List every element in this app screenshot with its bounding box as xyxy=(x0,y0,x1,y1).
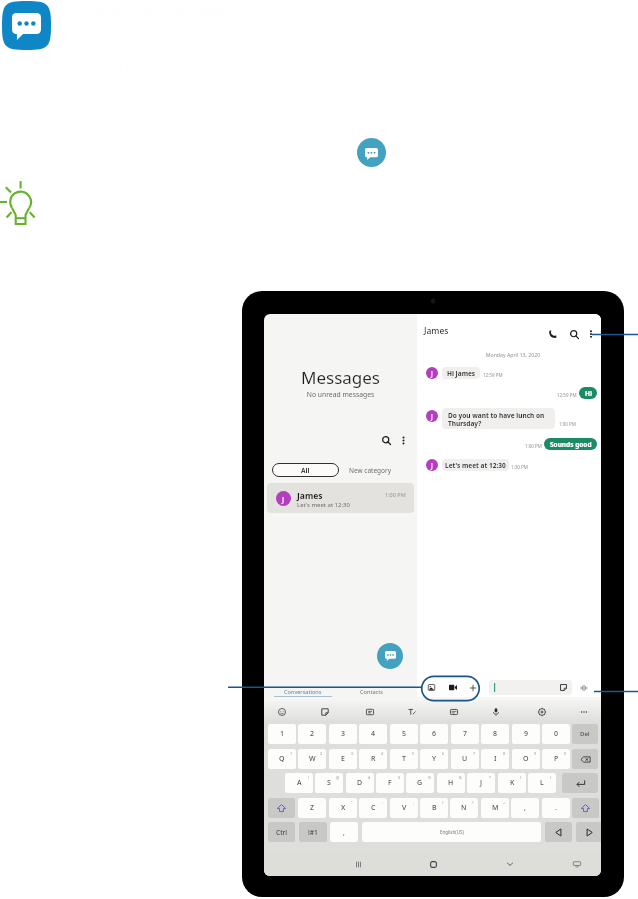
button[interactable]: 6 xyxy=(420,749,448,769)
staticText: ; xyxy=(413,800,414,805)
button[interactable]: ' xyxy=(298,798,326,818)
button[interactable]: English(US) xyxy=(362,822,541,842)
button[interactable]: , xyxy=(511,798,539,818)
button[interactable]: More xyxy=(576,704,592,720)
staticText: % xyxy=(428,775,431,780)
button[interactable]: 9 xyxy=(512,724,540,744)
button[interactable]: * xyxy=(467,773,495,793)
button[interactable]: # xyxy=(346,773,374,793)
button[interactable]: Hide keyboard xyxy=(568,856,586,872)
button[interactable]: 4 xyxy=(359,749,387,769)
button[interactable]: 5 xyxy=(390,724,418,744)
staticText: R xyxy=(371,754,376,764)
other: Samsung Messages xyxy=(2,1,51,50)
button[interactable]: New category xyxy=(349,463,409,477)
button[interactable]: More options xyxy=(396,433,410,447)
button[interactable]: 6 xyxy=(420,724,448,744)
button[interactable]: 8 xyxy=(481,724,509,744)
button[interactable]: @ xyxy=(315,773,343,793)
button[interactable]: !#1 xyxy=(299,822,327,842)
button[interactable]: All xyxy=(272,463,339,477)
button[interactable]: Backspace xyxy=(572,749,598,769)
button[interactable]: Del xyxy=(572,724,598,744)
button[interactable]: More options xyxy=(584,327,598,341)
staticText: 6 xyxy=(442,751,445,756)
button[interactable]: 8 xyxy=(481,749,509,769)
staticText: 9 xyxy=(524,729,529,739)
button[interactable]: Shift xyxy=(268,798,295,818)
staticText: C xyxy=(371,803,376,813)
staticText: " xyxy=(351,800,353,805)
button[interactable]: Conversations xyxy=(272,687,334,697)
button[interactable]: ? xyxy=(450,798,478,818)
button[interactable]: 1 xyxy=(268,724,296,744)
button[interactable]: & xyxy=(437,773,465,793)
staticText: 5 xyxy=(402,729,407,739)
button[interactable]: 7 xyxy=(451,749,479,769)
button[interactable]: New conversation xyxy=(377,643,403,669)
button[interactable]: Stickers xyxy=(317,704,333,720)
button[interactable]: Insert image xyxy=(424,680,439,695)
button[interactable]: Home xyxy=(424,856,442,872)
button[interactable]: 7 xyxy=(451,724,479,744)
button[interactable]: ; xyxy=(390,798,418,818)
button[interactable]: 2 xyxy=(298,724,326,744)
button[interactable]: Search conversation xyxy=(567,327,581,341)
button[interactable]: J xyxy=(267,483,414,513)
button[interactable]: / xyxy=(420,798,448,818)
staticText: : xyxy=(382,800,383,805)
button[interactable]: " xyxy=(329,798,357,818)
button[interactable]: Text style xyxy=(404,704,420,720)
button[interactable]: ) xyxy=(528,773,556,793)
button[interactable]: GIF xyxy=(362,704,378,720)
staticText: New category xyxy=(349,466,391,475)
button[interactable]: Move right xyxy=(576,822,601,842)
button[interactable]: + xyxy=(481,798,509,818)
button[interactable]: Contacts xyxy=(348,687,394,697)
button[interactable]: 3 xyxy=(329,724,357,744)
staticText: ? xyxy=(472,800,474,805)
button[interactable]: . xyxy=(542,798,570,818)
button[interactable]: Settings xyxy=(534,704,550,720)
staticText: 7 xyxy=(473,751,476,756)
button[interactable]: 1 xyxy=(268,749,296,769)
button[interactable]: 0 xyxy=(542,724,570,744)
button[interactable]: Ctrl xyxy=(268,822,295,842)
button[interactable]: % xyxy=(406,773,434,793)
button[interactable]: 4 xyxy=(359,724,387,744)
other: Messages icon xyxy=(357,138,386,167)
button[interactable]: Back xyxy=(501,856,519,872)
button[interactable]: 9 xyxy=(512,749,540,769)
button[interactable]: Stickers xyxy=(560,684,568,692)
staticText: 8 xyxy=(493,729,498,739)
button[interactable]: , xyxy=(330,822,358,842)
button[interactable]: 2 xyxy=(298,749,326,769)
staticText: 1:00 PM xyxy=(559,421,576,427)
staticText: 7 xyxy=(463,729,468,739)
button[interactable]: Clipboard xyxy=(446,704,462,720)
button[interactable]: Voice input xyxy=(488,704,504,720)
button[interactable]: ( xyxy=(498,773,526,793)
button[interactable]: Search xyxy=(379,433,393,447)
button[interactable]: Voice input xyxy=(577,681,590,694)
staticText: 6 xyxy=(432,729,437,739)
staticText: 12:59 PM xyxy=(557,392,577,398)
button[interactable]: Stickers xyxy=(489,680,572,695)
button[interactable]: : xyxy=(359,798,387,818)
button[interactable]: Enter xyxy=(562,773,598,793)
staticText: J xyxy=(282,494,285,504)
button[interactable]: Shift xyxy=(572,798,599,818)
button[interactable]: Recent apps xyxy=(349,856,367,872)
button[interactable]: Camera xyxy=(445,680,460,695)
button[interactable]: $ xyxy=(376,773,404,793)
staticText: G xyxy=(417,778,423,788)
button[interactable]: 5 xyxy=(390,749,418,769)
button[interactable]: 0 xyxy=(542,749,570,769)
staticText: L xyxy=(540,778,544,788)
button[interactable]: ! xyxy=(285,773,313,793)
button[interactable]: Call xyxy=(546,327,560,341)
button[interactable]: Move left xyxy=(545,822,572,842)
button[interactable]: 3 xyxy=(329,749,357,769)
button[interactable]: Add attachment xyxy=(465,680,480,695)
button[interactable]: Emoji xyxy=(274,704,290,720)
